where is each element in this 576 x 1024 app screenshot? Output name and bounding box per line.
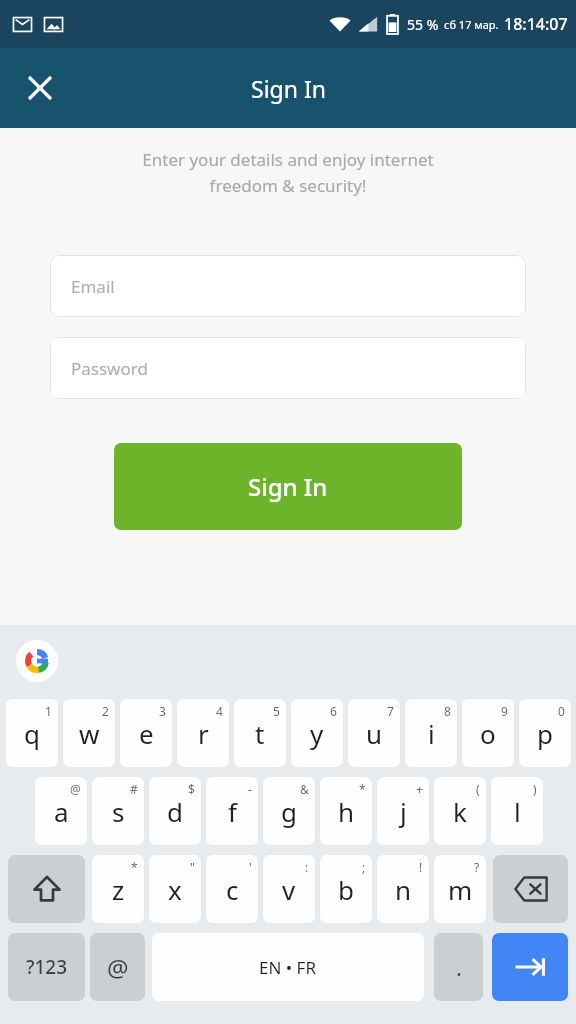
button[interactable]: z (92, 855, 144, 923)
staticText: # (130, 781, 138, 797)
button[interactable]: t (234, 699, 286, 767)
button[interactable]: g (263, 777, 315, 845)
staticText: @ (70, 781, 81, 797)
button[interactable]: Backspace (493, 855, 568, 923)
staticText: Email (71, 275, 115, 298)
staticText: j (400, 794, 407, 829)
staticText: w (79, 716, 100, 751)
button[interactable]: Shift (8, 855, 85, 923)
staticText: " (190, 859, 195, 875)
staticText: 3 (159, 703, 166, 719)
button[interactable]: d (149, 777, 201, 845)
staticText: e (139, 716, 154, 751)
staticText: - (248, 781, 252, 797)
staticText: l (514, 794, 521, 829)
staticText: : (305, 859, 309, 875)
staticText: r (198, 716, 209, 751)
staticText: * (359, 781, 366, 797)
button[interactable]: l (491, 777, 543, 845)
staticText: 55 % (407, 15, 439, 34)
button[interactable]: r (177, 699, 229, 767)
button[interactable]: e (120, 699, 172, 767)
staticText: o (480, 716, 496, 751)
button[interactable]: h (320, 777, 372, 845)
button[interactable]: Close (16, 64, 64, 112)
staticText: a (54, 794, 69, 829)
button[interactable]: EN • FR (152, 933, 424, 1001)
staticText: u (366, 716, 383, 751)
staticText: Sign In (248, 470, 328, 503)
staticText: 0 (558, 703, 565, 719)
staticText: h (338, 794, 355, 829)
staticText: EN • FR (259, 956, 317, 979)
staticText: f (228, 794, 237, 829)
staticText: + (416, 781, 423, 797)
button[interactable]: x (149, 855, 201, 923)
button[interactable]: Password (50, 337, 526, 399)
staticText: 9 (501, 703, 508, 719)
button[interactable]: f (206, 777, 258, 845)
staticText: сб 17 мар. (444, 17, 499, 32)
staticText: 5 (273, 703, 280, 719)
staticText: Password (71, 357, 148, 380)
staticText: k (453, 794, 467, 829)
button[interactable]: Email (50, 255, 526, 317)
staticText: t (255, 716, 265, 751)
staticText: ( (476, 781, 480, 797)
staticText: b (338, 872, 354, 907)
staticText: 7 (387, 703, 394, 719)
button[interactable]: j (377, 777, 429, 845)
staticText: z (112, 872, 125, 907)
staticText: 1 (45, 703, 52, 719)
button[interactable]: w (63, 699, 115, 767)
button[interactable]: Google (16, 640, 58, 682)
button[interactable]: y (291, 699, 343, 767)
staticText: 4 (216, 703, 223, 719)
button[interactable]: q (6, 699, 58, 767)
staticText: q (24, 716, 40, 751)
staticText: 2 (102, 703, 109, 719)
staticText: d (167, 794, 183, 829)
staticText: ' (249, 859, 252, 875)
button[interactable]: ?123 (8, 933, 85, 1001)
staticText: . (456, 952, 462, 982)
staticText: x (168, 872, 182, 907)
staticText: v (282, 872, 296, 907)
button[interactable]: p (519, 699, 571, 767)
staticText: ! (419, 859, 423, 875)
staticText: ) (533, 781, 537, 797)
staticText: ; (362, 859, 366, 875)
staticText: ?123 (26, 954, 68, 980)
staticText: * (131, 859, 138, 875)
staticText: 8 (444, 703, 451, 719)
button[interactable]: s (92, 777, 144, 845)
button[interactable]: k (434, 777, 486, 845)
staticText: Sign In (251, 73, 326, 104)
staticText: c (226, 872, 239, 907)
button[interactable]: b (320, 855, 372, 923)
staticText: 18:14:07 (504, 13, 568, 35)
button[interactable]: Sign In (114, 443, 462, 530)
staticText: s (112, 794, 125, 829)
staticText: Enter your details and enjoy internet fr… (24, 148, 552, 197)
button[interactable]: u (348, 699, 400, 767)
staticText: g (281, 794, 297, 829)
staticText: p (537, 716, 553, 751)
button[interactable]: v (263, 855, 315, 923)
staticText: & (300, 781, 309, 797)
button[interactable]: c (206, 855, 258, 923)
button[interactable]: m (434, 855, 486, 923)
staticText: n (395, 872, 412, 907)
button[interactable]: a (35, 777, 87, 845)
button[interactable]: . (434, 933, 483, 1001)
button[interactable]: Enter (492, 933, 568, 1001)
staticText: $ (188, 781, 195, 797)
button[interactable]: n (377, 855, 429, 923)
staticText: y (310, 716, 324, 751)
staticText: @ (107, 951, 129, 984)
staticText: m (448, 872, 473, 907)
staticText: 6 (330, 703, 337, 719)
button[interactable]: @ (90, 933, 145, 1001)
button[interactable]: o (462, 699, 514, 767)
button[interactable]: i (405, 699, 457, 767)
